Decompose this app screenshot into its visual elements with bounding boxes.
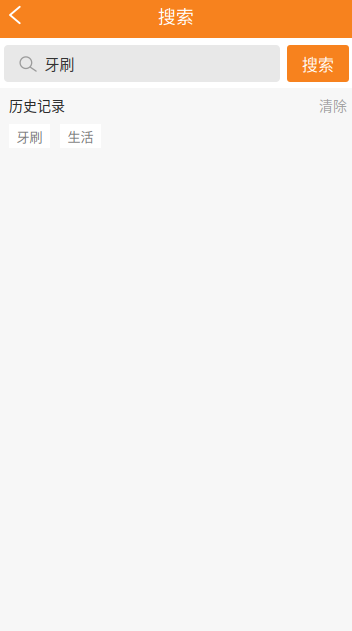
button[interactable]: 清除 — [319, 95, 347, 115]
button[interactable]: 生活 — [60, 124, 101, 148]
staticText: 搜索 — [302, 52, 334, 75]
staticText: 搜索 — [158, 3, 194, 29]
button[interactable]: 搜索框 — [4, 45, 280, 82]
button[interactable]: Back — [0, 0, 39, 38]
staticText: 牙刷 — [44, 53, 74, 74]
button[interactable]: 搜索 — [287, 45, 349, 82]
staticText: 清除 — [319, 95, 347, 115]
button[interactable]: 牙刷 — [9, 124, 50, 148]
staticText: 历史记录 — [9, 95, 65, 115]
staticText: 牙刷 — [16, 126, 42, 145]
staticText: 生活 — [67, 126, 93, 145]
